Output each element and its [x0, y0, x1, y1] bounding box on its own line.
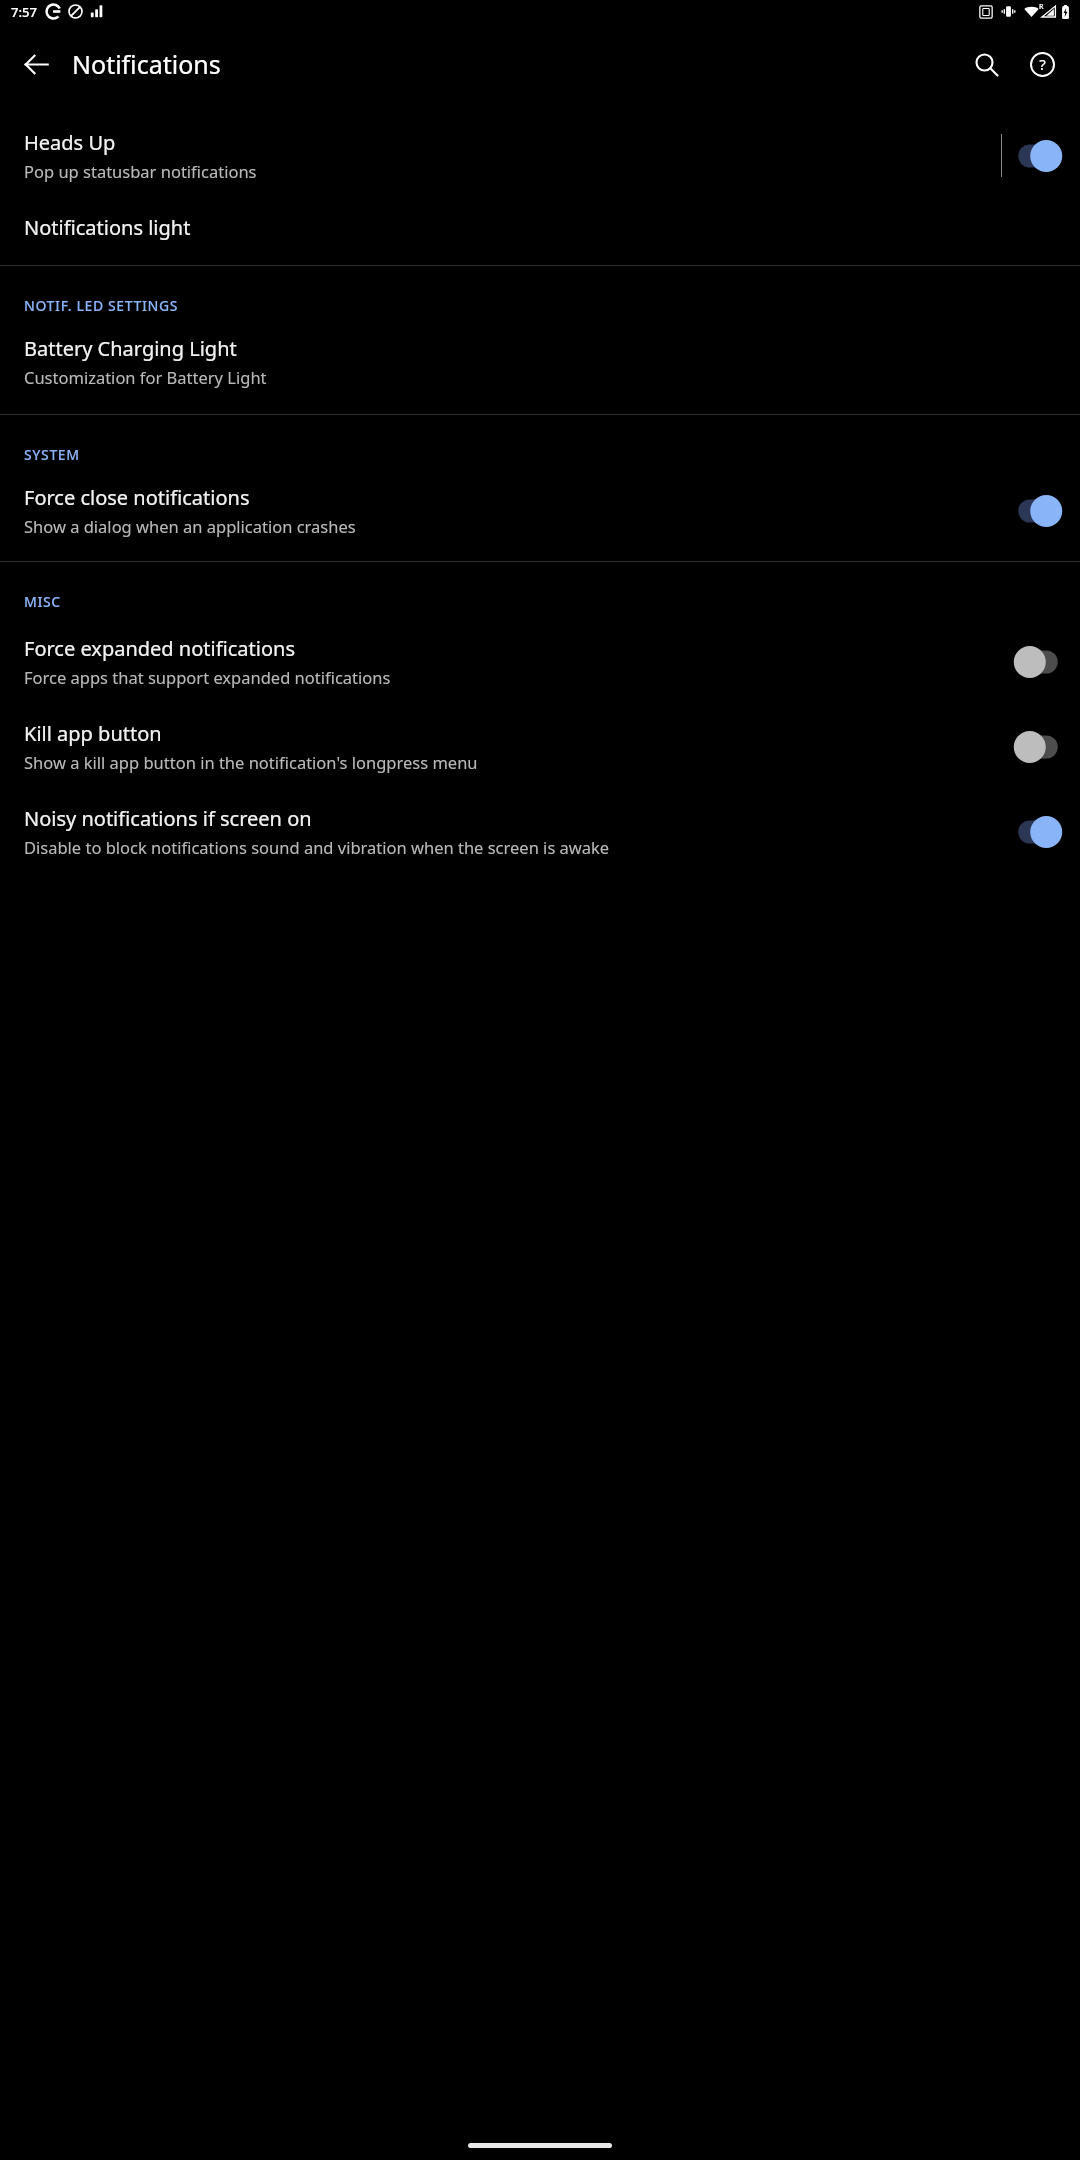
button[interactable]: Noisy notifications if screen on [0, 789, 1080, 874]
staticText: Force apps that support expanded notific… [24, 666, 391, 688]
staticText: ? [1039, 54, 1046, 74]
staticText: Force close notifications [24, 484, 250, 511]
button[interactable]: Back [8, 36, 64, 92]
staticText: Notifications light [24, 214, 191, 241]
button[interactable]: Toggle off [1008, 642, 1068, 682]
button[interactable]: Toggle on [1008, 812, 1068, 852]
staticText: Force expanded notifications [24, 635, 295, 662]
staticText: Pop up statusbar notifications [24, 160, 257, 182]
staticText: Disable to block notifications sound and… [24, 836, 610, 858]
button[interactable]: Notifications light [0, 192, 1080, 265]
staticText: Kill app button [24, 720, 162, 747]
button[interactable]: Help [1014, 36, 1070, 92]
staticText: Heads Up [24, 129, 116, 156]
staticText: R [1039, 2, 1044, 12]
staticText: Show a kill app button in the notificati… [24, 751, 478, 773]
button[interactable]: Toggle on [1008, 136, 1068, 176]
button[interactable]: Kill app button [0, 704, 1080, 789]
button[interactable]: Search [958, 36, 1014, 92]
button[interactable]: Force expanded notifications [0, 619, 1080, 704]
staticText: Battery Charging Light [24, 335, 237, 362]
button[interactable]: Toggle off [1008, 727, 1068, 767]
staticText: NOTIF. LED SETTINGS [24, 296, 179, 315]
staticText: MISC [24, 592, 61, 611]
button[interactable]: Battery Charging Light [0, 323, 1080, 414]
staticText: Show a dialog when an application crashe… [24, 515, 356, 537]
button[interactable]: Heads Up [0, 119, 1080, 192]
staticText: SYSTEM [24, 445, 80, 464]
staticText: Customization for Battery Light [24, 366, 267, 388]
staticText: Notifications [72, 47, 221, 81]
button[interactable]: Force close notifications [0, 472, 1080, 561]
staticText: 7:57 [11, 3, 37, 21]
button[interactable]: Toggle on [1008, 491, 1068, 531]
staticText: Noisy notifications if screen on [24, 805, 312, 832]
